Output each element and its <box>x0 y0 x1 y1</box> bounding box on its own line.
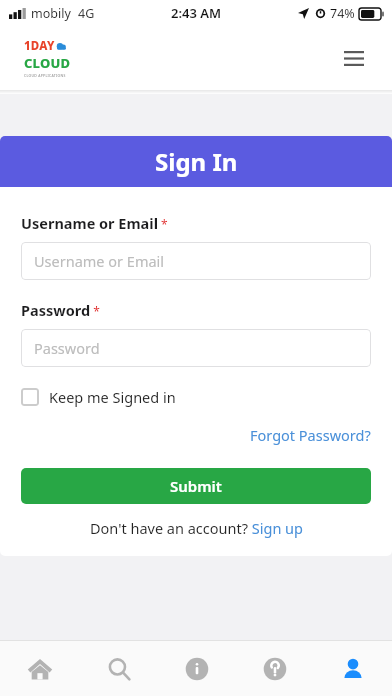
staticText: Keep me Signed in <box>49 387 176 407</box>
staticText: Submit <box>170 476 222 496</box>
staticText: Password <box>34 338 100 358</box>
button[interactable]: Keep me Signed in <box>21 387 176 407</box>
button[interactable]: Menu <box>332 36 376 80</box>
button[interactable]: Username or Email <box>21 242 371 280</box>
button[interactable]: Info <box>158 641 236 696</box>
button[interactable]: Password <box>21 329 371 367</box>
button[interactable]: Submit <box>21 468 371 504</box>
button[interactable]: Search <box>79 641 158 696</box>
staticText: 74% <box>330 5 355 22</box>
staticText: Username or Email <box>34 251 165 271</box>
staticText: Sign In <box>155 145 238 178</box>
staticText: Username or Email * <box>21 213 168 233</box>
button[interactable]: Don't have an account? Sign up <box>90 518 303 538</box>
button[interactable]: Home <box>0 641 79 696</box>
staticText: CLOUD <box>24 54 71 72</box>
staticText: CLOUD APPLICATIONS <box>24 73 66 78</box>
staticText: mobily <box>31 5 71 22</box>
staticText: 1DAY <box>24 38 55 54</box>
button[interactable]: Profile <box>314 641 392 696</box>
button[interactable]: Help <box>236 641 314 696</box>
button[interactable]: Forgot Password? <box>250 425 371 445</box>
staticText: 4G <box>78 5 95 22</box>
staticText: Password * <box>21 300 100 320</box>
staticText: 2:43 AM <box>171 4 222 22</box>
